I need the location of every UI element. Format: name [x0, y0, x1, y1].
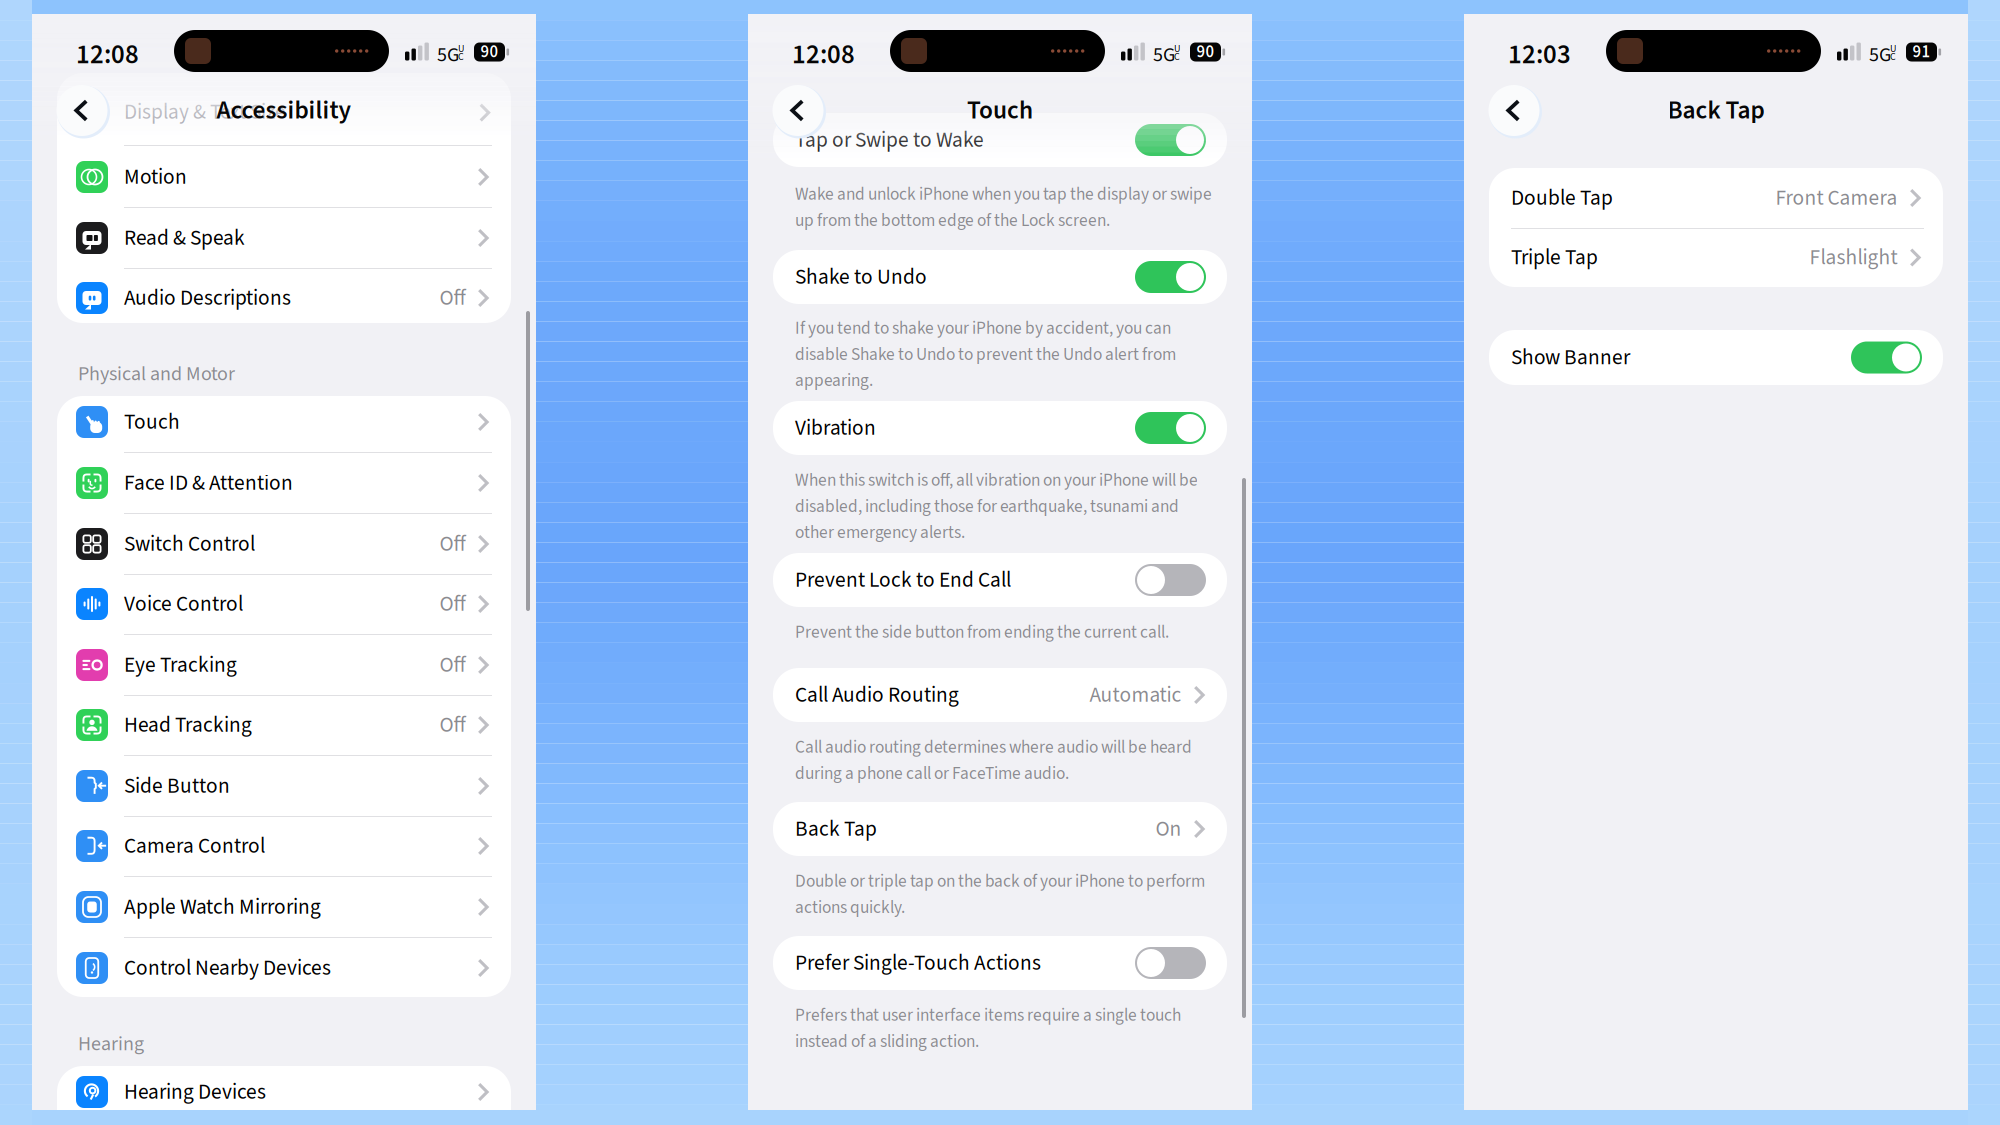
button[interactable]: Read & Speak — [57, 208, 511, 268]
staticText: C — [458, 50, 464, 64]
staticText: When this switch is off, all vibration o… — [795, 468, 1198, 545]
button[interactable]: Shake to Undo — [773, 250, 1227, 304]
staticText: Call audio routing determines where audi… — [795, 735, 1192, 786]
button[interactable]: Back — [771, 84, 824, 137]
staticText: 5G — [437, 41, 459, 69]
staticText: Automatic — [1089, 680, 1181, 710]
staticText: Prefer Single-Touch Actions — [795, 948, 1041, 978]
staticText: Hearing — [78, 1030, 144, 1058]
button[interactable]: Back — [1487, 84, 1540, 137]
staticText: Back Tap — [1667, 92, 1764, 129]
button[interactable]: Side Button — [57, 756, 511, 816]
staticText: On — [1155, 814, 1181, 844]
button[interactable]: Double Tap — [1489, 168, 1943, 228]
button[interactable]: Prevent Lock to End Call — [773, 553, 1227, 607]
staticText: Motion — [124, 162, 187, 192]
staticText: Side Button — [124, 771, 230, 801]
button[interactable]: Audio Descriptions — [57, 268, 511, 328]
staticText: Wake and unlock iPhone when you tap the … — [795, 182, 1212, 233]
staticText: 12:03 — [1508, 36, 1571, 74]
staticText: 12:08 — [76, 36, 139, 74]
staticText: Off — [439, 710, 465, 740]
staticText: 5G — [1153, 41, 1175, 69]
staticText: Control Nearby Devices — [124, 953, 331, 983]
staticText: Vibration — [795, 413, 876, 443]
staticText: Flashlight — [1809, 242, 1897, 273]
staticText: Double Tap — [1511, 183, 1613, 213]
staticText: Audio Descriptions — [124, 283, 291, 313]
staticText: Off — [439, 650, 465, 680]
staticText: Prefers that user interface items requir… — [795, 1003, 1181, 1054]
staticText: Back Tap — [795, 814, 877, 844]
staticText: U — [458, 42, 464, 56]
staticText: C — [1890, 50, 1896, 64]
staticText: Touch — [124, 407, 180, 437]
button[interactable]: Camera Control — [57, 816, 511, 876]
staticText: Shake to Undo — [795, 262, 927, 292]
button[interactable]: Show Banner — [1489, 330, 1943, 385]
button[interactable]: Switch Control — [57, 514, 511, 574]
button[interactable]: Tap or Swipe to Wake — [773, 113, 1227, 167]
button[interactable]: Back Tap — [773, 802, 1227, 856]
staticText: Prevent Lock to End Call — [795, 565, 1011, 595]
staticText: Tap or Swipe to Wake — [795, 125, 984, 155]
staticText: Call Audio Routing — [795, 680, 959, 710]
button[interactable]: Face ID & Attention — [57, 453, 511, 513]
button[interactable]: Eye Tracking — [57, 635, 511, 695]
button[interactable]: Triple Tap — [1489, 228, 1943, 287]
button[interactable]: Call Audio Routing — [773, 668, 1227, 722]
staticText: Off — [439, 283, 465, 313]
staticText: U — [1890, 42, 1896, 56]
button[interactable]: Prefer Single-Touch Actions — [773, 936, 1227, 990]
button[interactable]: Hearing Devices — [57, 1062, 511, 1122]
staticText: Off — [439, 589, 465, 619]
staticText: 91 — [1912, 40, 1930, 64]
button[interactable]: Voice Control — [57, 574, 511, 634]
button[interactable]: Vibration — [773, 401, 1227, 455]
staticText: Double or triple tap on the back of your… — [795, 869, 1205, 920]
staticText: Eye Tracking — [124, 650, 237, 680]
button[interactable]: Control Nearby Devices — [57, 938, 511, 998]
button[interactable]: Back — [55, 84, 108, 137]
staticText: Triple Tap — [1511, 242, 1598, 273]
staticText: Head Tracking — [124, 710, 252, 740]
staticText: Hearing Devices — [124, 1077, 266, 1107]
staticText: Show Banner — [1511, 342, 1630, 373]
staticText: Camera Control — [124, 831, 265, 861]
staticText: If you tend to shake your iPhone by acci… — [795, 316, 1176, 393]
staticText: Apple Watch Mirroring — [124, 892, 321, 922]
staticText: 90 — [480, 40, 498, 64]
button[interactable]: Touch — [57, 392, 511, 452]
staticText: Physical and Motor — [78, 360, 235, 388]
button[interactable]: Motion — [57, 147, 511, 207]
staticText: 12:08 — [792, 36, 855, 74]
staticText: Front Camera — [1775, 183, 1897, 213]
staticText: Read & Speak — [124, 223, 245, 253]
staticText: 90 — [1196, 40, 1214, 64]
staticText: Face ID & Attention — [124, 468, 293, 498]
button[interactable]: Apple Watch Mirroring — [57, 877, 511, 937]
staticText: Accessibility — [216, 92, 351, 129]
staticText: Off — [439, 529, 465, 559]
staticText: 5G — [1869, 41, 1891, 69]
staticText: Switch Control — [124, 529, 255, 559]
button[interactable]: Head Tracking — [57, 695, 511, 755]
staticText: Display & Text Size — [124, 97, 286, 127]
staticText: Prevent the side button from ending the … — [795, 620, 1169, 645]
staticText: Voice Control — [124, 589, 243, 619]
staticText: Touch — [967, 92, 1033, 129]
staticText: C — [1174, 50, 1180, 64]
staticText: U — [1174, 42, 1180, 56]
